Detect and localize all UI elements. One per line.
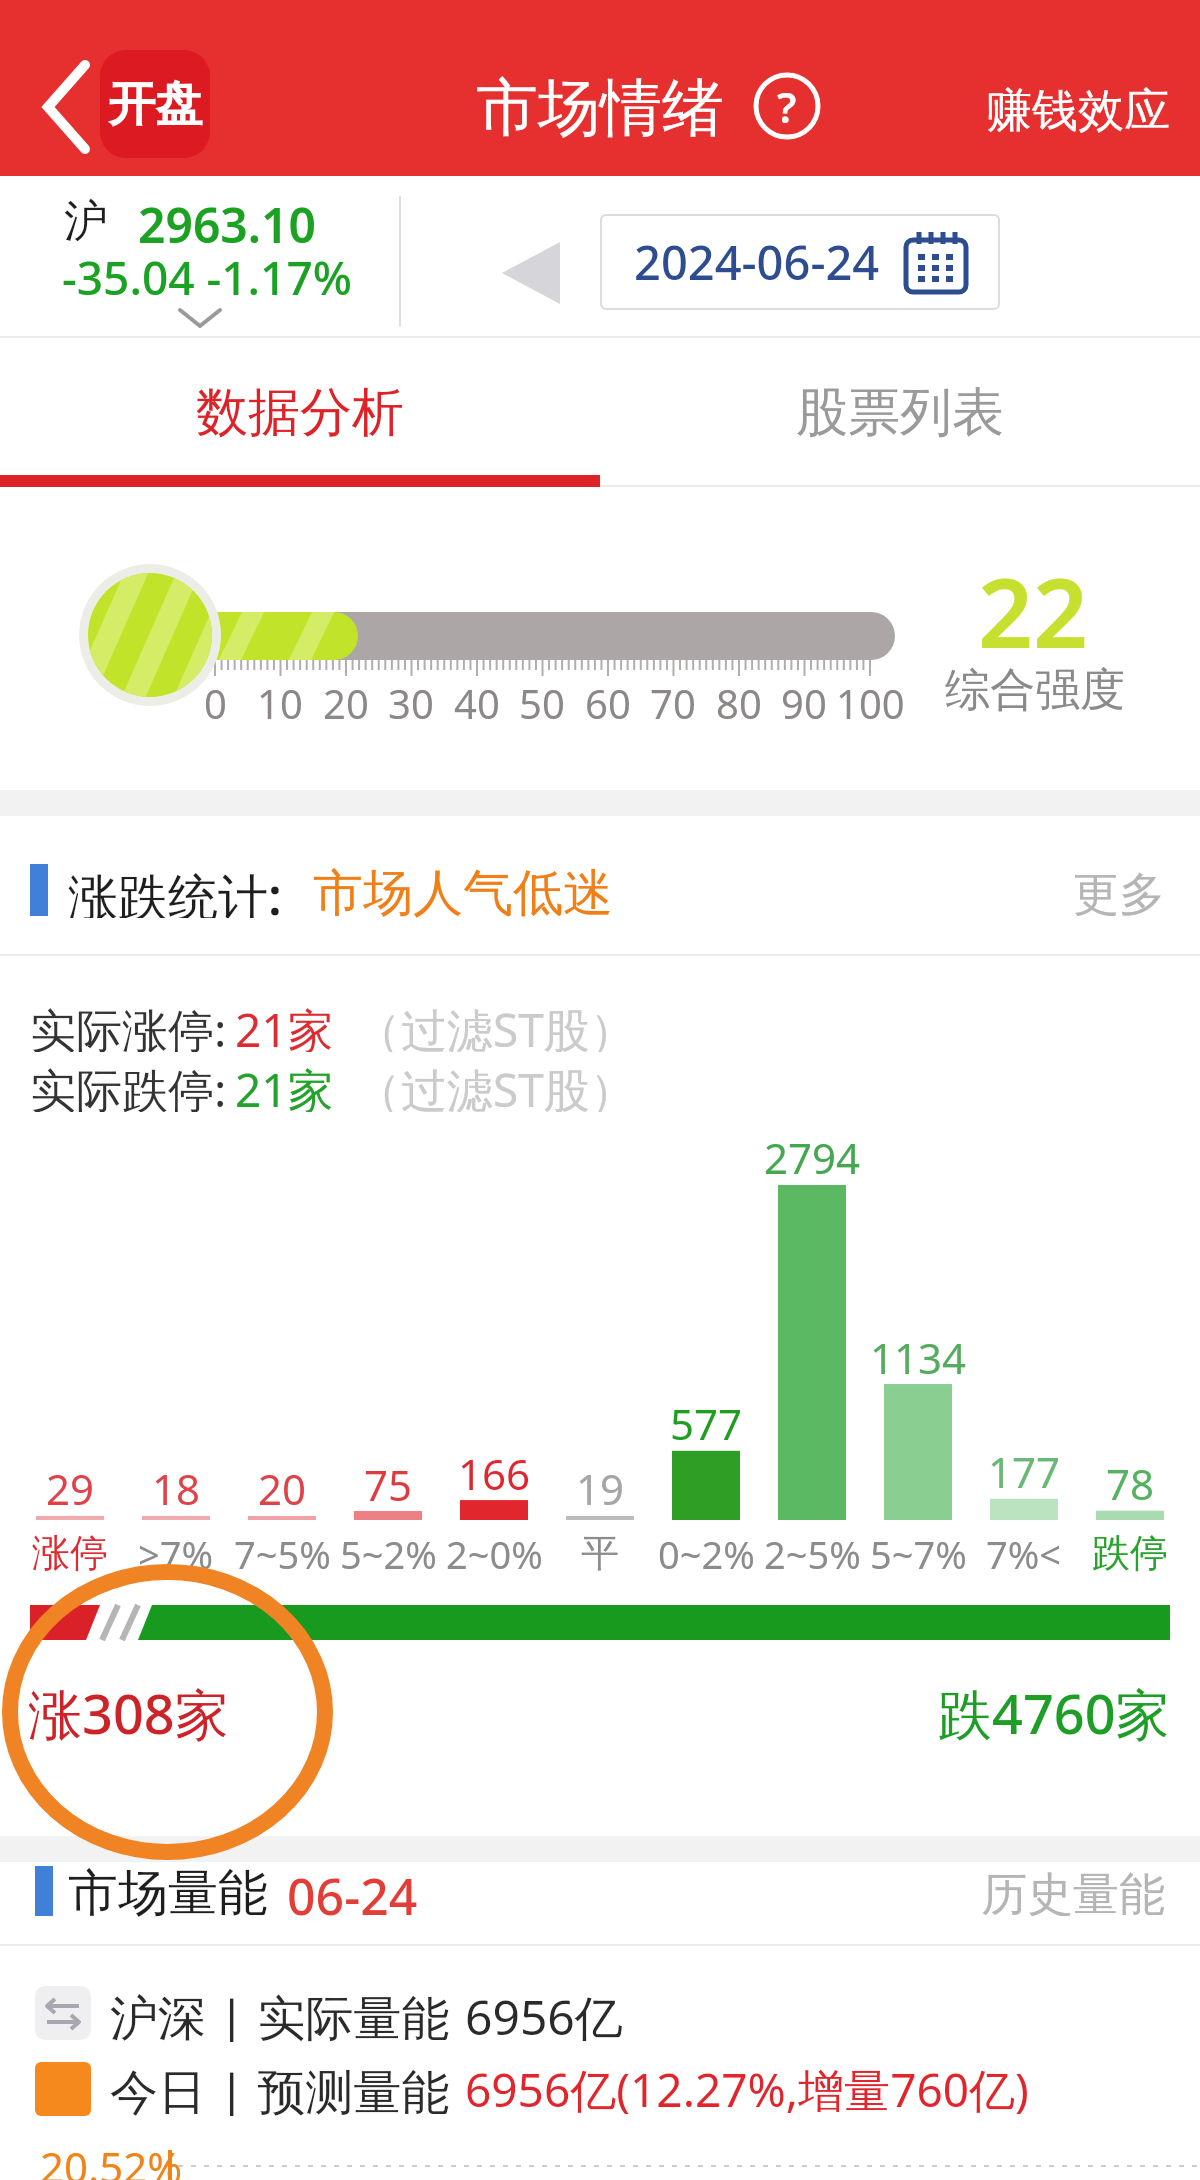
button[interactable]: 2024-06-24 [600, 214, 1000, 310]
button[interactable]: 数据分析 [150, 380, 450, 444]
staticText: 2963.10 [138, 192, 316, 246]
staticText: 跌4760家 [938, 1676, 1170, 1742]
staticText: 市场情绪 [476, 69, 724, 147]
staticText: 1134 [870, 1329, 967, 1377]
staticText: 06-24 [287, 1862, 418, 1918]
staticText: 30 [388, 676, 434, 720]
staticText: 涨308家 [28, 1676, 229, 1742]
button[interactable]: 更多 [1040, 866, 1165, 916]
staticText: 2794 [764, 1129, 861, 1177]
staticText: 7%< [986, 1528, 1062, 1578]
staticText: 5~7% [870, 1528, 967, 1578]
staticText: 40 [454, 676, 500, 720]
staticText: 沪深 | 实际量能 [110, 1984, 450, 2042]
button[interactable]: 开盘 [100, 50, 210, 158]
button[interactable] [30, 55, 100, 160]
staticText: 股票列表 [796, 380, 1004, 444]
staticText: 7~5% [234, 1528, 331, 1578]
staticText: 29 [46, 1460, 95, 1508]
staticText: 177 [988, 1443, 1061, 1491]
staticText: 5~2% [340, 1528, 437, 1578]
staticText: 90 [781, 676, 827, 720]
staticText: 数据分析 [196, 380, 404, 444]
staticText: 0 [204, 676, 227, 720]
staticText: >7% [138, 1528, 214, 1578]
staticText: 18 [152, 1460, 201, 1508]
staticText: 78 [1106, 1455, 1155, 1503]
button[interactable]: ? [753, 72, 821, 140]
staticText: 市场人气低迷 [313, 862, 613, 918]
staticText: 沪 [64, 194, 108, 244]
button[interactable] [500, 240, 564, 306]
staticText: 市场量能 [68, 1862, 268, 1918]
staticText: 0~2% [658, 1528, 755, 1578]
button[interactable]: 股票列表 [750, 380, 1050, 444]
staticText: 21家 [235, 1058, 334, 1112]
staticText: 50 [519, 676, 565, 720]
staticText: 实际涨停: [30, 998, 227, 1052]
staticText: 20 [258, 1460, 307, 1508]
staticText: 577 [670, 1395, 743, 1443]
staticText: 历史量能 [981, 1866, 1165, 1916]
staticText: 涨跌统计: [68, 862, 282, 918]
staticText: 平 [581, 1529, 619, 1577]
staticText: 10 [257, 676, 303, 720]
button[interactable]: 历史量能 [965, 1866, 1165, 1916]
staticText: 166 [458, 1445, 531, 1493]
staticText: 60 [585, 676, 631, 720]
staticText: 今日 | 预测量能 [110, 2058, 450, 2116]
staticText: 涨停 [32, 1529, 108, 1577]
staticText: 19 [576, 1460, 625, 1508]
staticText: 2~5% [764, 1528, 861, 1578]
staticText: 6956亿(12.27%,增量760亿) [465, 2058, 1029, 2116]
staticText: 2~0% [446, 1528, 543, 1578]
staticText: 20 [323, 676, 369, 720]
staticText: 赚钱效应 [986, 82, 1170, 136]
staticText: 75 [364, 1456, 413, 1504]
staticText: 6956亿 [465, 1984, 623, 2042]
staticText: 21家 [235, 998, 334, 1052]
staticText: 综合强度 [945, 662, 1125, 716]
staticText: 开盘 [108, 75, 202, 134]
staticText: ? [777, 78, 797, 135]
staticText: 跌停 [1092, 1529, 1168, 1577]
staticText: 80 [716, 676, 762, 720]
staticText: 22 [978, 545, 1088, 655]
staticText: 2024-06-24 [634, 230, 880, 294]
staticText: 实际跌停: [30, 1058, 227, 1112]
staticText: 更多 [1073, 866, 1165, 916]
staticText: 70 [650, 676, 696, 720]
staticText: 20.52% [40, 2138, 183, 2180]
staticText: （过滤ST股） [355, 1058, 636, 1112]
staticText: 100 [836, 676, 905, 720]
staticText: （过滤ST股） [355, 998, 636, 1052]
button[interactable]: 赚钱效应 [960, 82, 1170, 136]
staticText: -35.04 -1.17% [62, 246, 352, 298]
